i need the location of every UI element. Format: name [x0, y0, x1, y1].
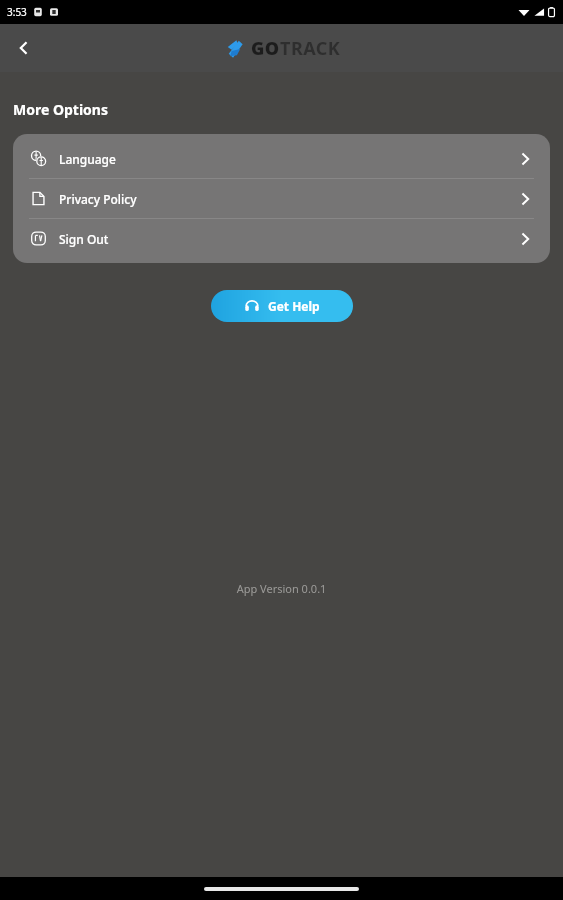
button[interactable]: Privacy Policy	[13, 179, 550, 218]
staticText: 3:53	[7, 5, 27, 19]
button[interactable]: Back	[8, 32, 40, 64]
staticText: Get Help	[268, 298, 320, 314]
staticText: Sign Out	[59, 231, 109, 247]
staticText: GO	[251, 36, 280, 61]
staticText: Privacy Policy	[59, 191, 137, 207]
staticText: More Options	[13, 100, 108, 119]
staticText: App Version 0.0.1	[0, 581, 563, 596]
button[interactable]: Sign Out	[13, 219, 550, 258]
button[interactable]: Language	[13, 139, 550, 178]
staticText: TRACK	[280, 36, 341, 61]
staticText: Language	[59, 151, 116, 167]
button[interactable]: Get Help	[211, 290, 353, 322]
